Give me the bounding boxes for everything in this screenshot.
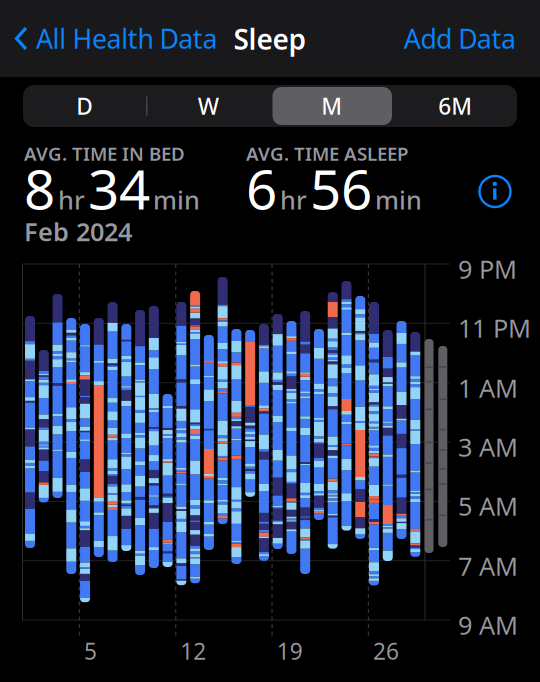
staticText: 19 xyxy=(277,636,303,666)
staticText: M xyxy=(321,91,342,121)
staticText: hr xyxy=(58,183,85,216)
staticText: Add Data xyxy=(404,21,516,56)
staticText: 8 xyxy=(24,152,55,225)
staticText: 5 AM xyxy=(458,489,518,523)
staticText: 34 xyxy=(88,152,150,225)
staticText: 9 PM xyxy=(458,252,517,286)
button[interactable]: All Health Data xyxy=(14,21,217,56)
staticText: All Health Data xyxy=(36,21,217,56)
staticText: 6 xyxy=(246,152,277,225)
staticText: Feb 2024 xyxy=(24,214,132,248)
staticText: 5 xyxy=(84,636,97,666)
staticText: 7 AM xyxy=(458,549,518,583)
staticText: AVG. TIME IN BED xyxy=(24,141,185,166)
staticText: D xyxy=(76,91,93,121)
staticText: 12 xyxy=(180,636,206,666)
staticText: 11 PM xyxy=(458,311,531,345)
staticText: AVG. TIME ASLEEP xyxy=(246,141,408,166)
button[interactable]: About Sleep xyxy=(478,174,512,208)
button[interactable]: M xyxy=(270,85,393,127)
staticText: 56 xyxy=(310,152,372,225)
staticText: 26 xyxy=(373,636,399,666)
button[interactable]: W xyxy=(146,85,270,127)
staticText: 3 AM xyxy=(458,430,518,464)
button[interactable]: Add Data xyxy=(404,21,516,56)
staticText: W xyxy=(198,91,219,121)
button[interactable]: D xyxy=(23,85,146,127)
staticText: 6M xyxy=(438,91,472,121)
staticText: hr xyxy=(280,183,307,216)
staticText: 1 AM xyxy=(458,371,518,405)
staticText: min xyxy=(153,183,200,216)
staticText: min xyxy=(375,183,422,216)
button[interactable]: 6M xyxy=(393,85,517,127)
staticText: 9 AM xyxy=(458,608,518,642)
staticText: Sleep xyxy=(233,20,306,58)
